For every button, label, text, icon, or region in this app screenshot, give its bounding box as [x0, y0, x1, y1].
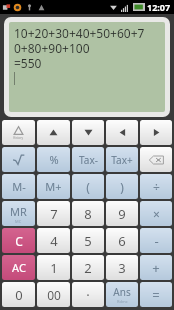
staticText: -	[154, 232, 159, 250]
staticText: 5	[84, 232, 92, 250]
staticText: Tax-	[79, 153, 98, 167]
button[interactable]: 3	[106, 255, 138, 280]
button[interactable]: 6	[106, 228, 138, 253]
button[interactable]: Right	[140, 120, 172, 145]
staticText: MC	[15, 219, 22, 224]
staticText: +	[152, 259, 160, 277]
staticText: 10+20+30+40+50+60+7 0+80+90+100 =550	[14, 25, 145, 71]
staticText: Tax+	[111, 153, 133, 167]
button[interactable]: Up	[37, 120, 70, 145]
staticText: C	[15, 233, 23, 249]
staticText: MR	[10, 204, 27, 219]
staticText: 2	[84, 259, 92, 277]
button[interactable]: MR	[2, 201, 35, 226]
staticText: History	[13, 136, 24, 140]
staticText: 00	[47, 287, 61, 303]
staticText: 8	[84, 205, 92, 223]
button[interactable]: 1	[37, 255, 70, 280]
staticText: 4	[50, 232, 58, 250]
staticText: =	[152, 286, 160, 304]
button[interactable]: %	[37, 147, 70, 172]
button[interactable]: ×	[140, 201, 172, 226]
button[interactable]: Backspace	[140, 147, 172, 172]
staticText: 9	[118, 205, 126, 223]
button[interactable]: 00	[37, 282, 70, 307]
button[interactable]: Square root	[2, 147, 35, 172]
staticText: 6	[118, 232, 126, 250]
staticText: ×	[153, 206, 160, 222]
button[interactable]: 7	[37, 201, 70, 226]
staticText: M-	[12, 179, 26, 194]
button[interactable]: Tax-	[72, 147, 104, 172]
button[interactable]: Down	[72, 120, 104, 145]
staticText: Ans	[113, 285, 131, 299]
button[interactable]: C	[2, 228, 35, 253]
button[interactable]: (	[72, 174, 104, 199]
staticText: Rdmc	[117, 299, 128, 304]
staticText: 0	[15, 286, 23, 304]
button[interactable]: 0	[2, 282, 35, 307]
button[interactable]: )	[106, 174, 138, 199]
button[interactable]: Tax+	[106, 147, 138, 172]
button[interactable]: ·	[72, 282, 104, 307]
button[interactable]: 5	[72, 228, 104, 253]
staticText: 1	[50, 259, 58, 277]
button[interactable]: 2	[72, 255, 104, 280]
button[interactable]: Ans	[106, 282, 138, 307]
button[interactable]: M+	[37, 174, 70, 199]
button[interactable]: +	[140, 255, 172, 280]
staticText: ·	[86, 286, 90, 304]
staticText: 12:07	[147, 1, 171, 13]
button[interactable]: 4	[37, 228, 70, 253]
staticText: 3	[118, 259, 126, 277]
staticText: ÷	[153, 179, 160, 195]
staticText: (	[86, 179, 90, 195]
button[interactable]: -	[140, 228, 172, 253]
button[interactable]: ÷	[140, 174, 172, 199]
button[interactable]: AC	[2, 255, 35, 280]
staticText: )	[120, 179, 124, 195]
staticText: %	[49, 152, 59, 167]
staticText: AC	[12, 260, 26, 275]
button[interactable]: 9	[106, 201, 138, 226]
button[interactable]: M-	[2, 174, 35, 199]
button[interactable]: Left	[106, 120, 138, 145]
button[interactable]: =	[140, 282, 172, 307]
staticText: M+	[45, 179, 62, 194]
staticText: 7	[50, 205, 58, 223]
button[interactable]: History	[2, 120, 35, 145]
button[interactable]: 8	[72, 201, 104, 226]
